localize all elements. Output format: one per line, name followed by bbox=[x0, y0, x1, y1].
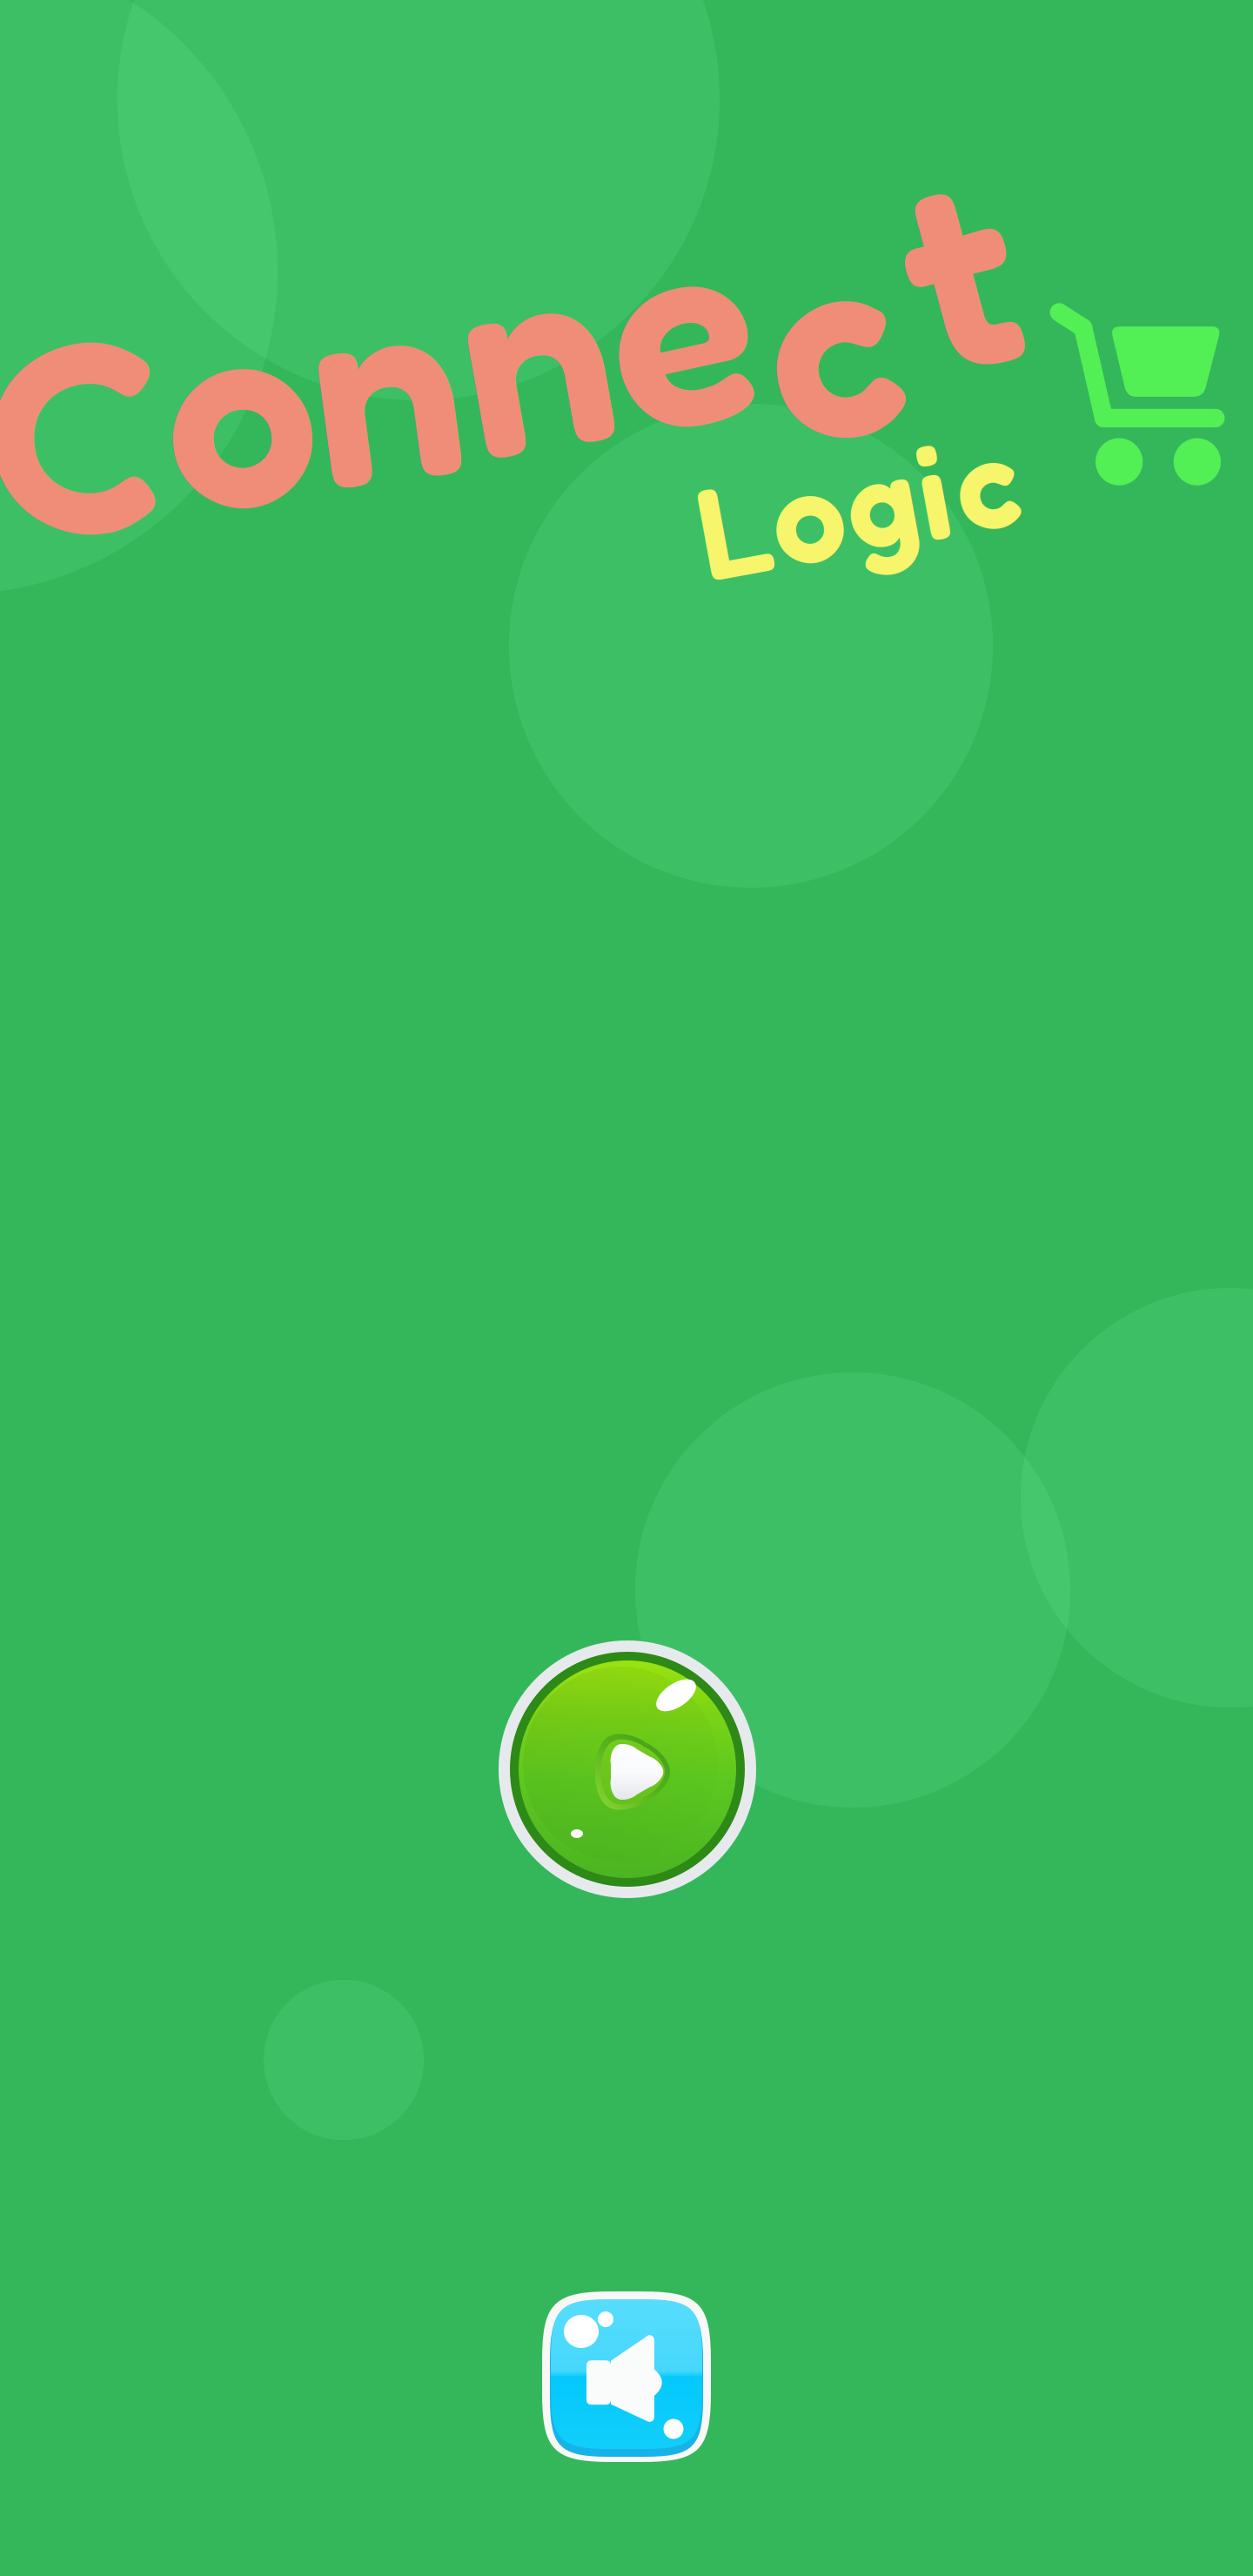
button[interactable]: Shop bbox=[1028, 278, 1253, 500]
staticText: e bbox=[606, 161, 750, 487]
staticText: C bbox=[0, 269, 159, 595]
staticText: n bbox=[309, 217, 460, 543]
staticText: o bbox=[771, 435, 843, 592]
staticText: o bbox=[164, 242, 315, 568]
staticText: L bbox=[696, 449, 769, 606]
staticText: c bbox=[953, 402, 1018, 559]
staticText: i bbox=[917, 412, 948, 570]
staticText: g bbox=[845, 421, 916, 578]
staticText: t bbox=[903, 106, 1013, 432]
staticText: c bbox=[761, 176, 896, 501]
button[interactable]: Play bbox=[492, 1634, 762, 1904]
button[interactable]: Sound bbox=[539, 2288, 714, 2465]
staticText: n bbox=[459, 186, 610, 512]
